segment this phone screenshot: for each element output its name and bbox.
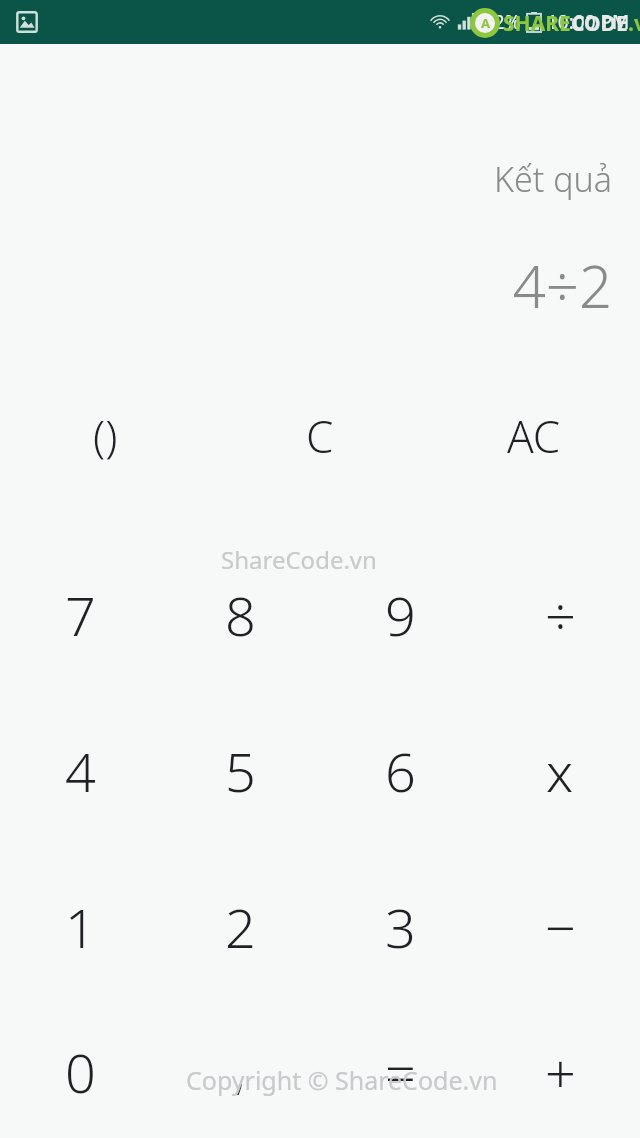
button[interactable]: Add	[490, 1005, 630, 1138]
staticText: 3	[385, 890, 416, 964]
button[interactable]: 7	[10, 537, 150, 693]
button[interactable]: Divide	[490, 537, 630, 693]
staticText: 5	[225, 734, 256, 808]
button[interactable]: 5	[170, 693, 310, 849]
button[interactable]: Equals	[330, 1005, 470, 1138]
staticText: AC	[507, 406, 561, 466]
staticText: +	[545, 1035, 576, 1109]
staticText: ()	[93, 406, 118, 466]
button[interactable]: Multiply	[490, 693, 630, 849]
button[interactable]: Subtract	[490, 849, 630, 1005]
staticText: ,	[235, 1042, 245, 1102]
staticText: =	[385, 1035, 416, 1109]
button[interactable]: 9	[330, 537, 470, 693]
button[interactable]: Clear entry	[265, 380, 375, 492]
staticText: SHARE	[503, 9, 571, 38]
staticText: 4	[65, 734, 96, 808]
staticText: .vn	[628, 9, 640, 38]
button[interactable]: 3	[330, 849, 470, 1005]
staticText: 22%	[483, 9, 521, 35]
button[interactable]: 1	[10, 849, 150, 1005]
button[interactable]: Decimal point	[170, 1005, 310, 1138]
staticText: 7	[65, 578, 96, 652]
button[interactable]: 6	[330, 693, 470, 849]
staticText: CODE	[571, 9, 628, 38]
staticText: 6	[385, 734, 416, 808]
button[interactable]: 4	[10, 693, 150, 849]
button[interactable]: All clear	[479, 380, 589, 492]
staticText: ÷	[545, 578, 576, 652]
button[interactable]: 2	[170, 849, 310, 1005]
staticText: ShareCode.vn	[221, 543, 377, 576]
staticText: A	[481, 14, 490, 32]
button[interactable]: Parentheses	[50, 380, 160, 492]
staticText: −	[545, 890, 576, 964]
staticText: 2	[225, 890, 256, 964]
staticText: 4÷2	[512, 246, 612, 325]
staticText: C	[306, 406, 334, 466]
staticText: 9	[385, 578, 416, 652]
staticText: 8	[225, 578, 256, 652]
staticText: 0	[65, 1035, 96, 1109]
staticText: x	[546, 734, 574, 808]
staticText: Kết quả	[494, 156, 612, 202]
staticText: 10:00 PM	[547, 9, 630, 35]
button[interactable]: 0	[10, 1005, 150, 1138]
staticText: 1	[65, 890, 96, 964]
staticText: Copyright © ShareCode.vn	[186, 1063, 498, 1097]
button[interactable]: 8	[170, 537, 310, 693]
